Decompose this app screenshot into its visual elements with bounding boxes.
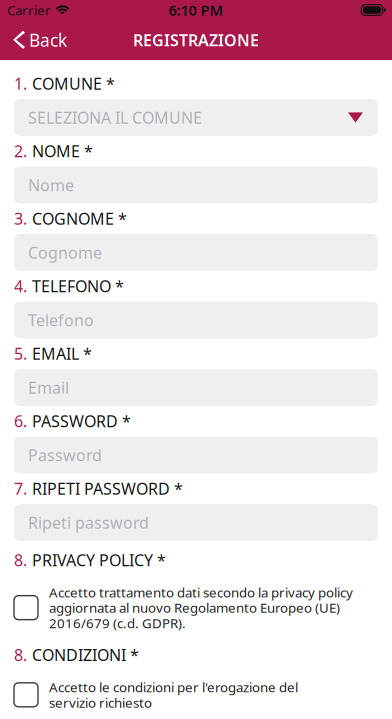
staticText: EMAIL * [32, 343, 92, 364]
staticText: 4. [14, 275, 27, 297]
staticText: 2. [14, 140, 27, 162]
staticText: Nome [28, 174, 74, 196]
staticText: CONDIZIONI * [32, 644, 139, 665]
staticText: Email [28, 377, 69, 398]
staticText: REGISTRAZIONE [133, 29, 259, 51]
staticText: 8. [14, 549, 27, 571]
staticText: PRIVACY POLICY * [32, 549, 166, 571]
staticText: 6:10 PM [168, 0, 223, 20]
staticText: PASSWORD * [32, 410, 131, 432]
staticText: 5. [14, 343, 27, 364]
button[interactable]: SELEZIONA IL COMUNE [14, 99, 378, 136]
staticText: 8. [14, 644, 27, 665]
staticText: RIPETI PASSWORD * [32, 478, 183, 499]
staticText: 6. [14, 410, 27, 432]
button[interactable]: Back [0, 20, 90, 60]
staticText: Accetto le condizioni per l'erogazione d… [49, 678, 298, 711]
staticText: COGNOME * [32, 208, 127, 229]
staticText: TELEFONO * [32, 275, 124, 297]
staticText: 7. [14, 478, 27, 499]
staticText: Ripeti password [28, 512, 149, 533]
staticText: Telefono [28, 309, 94, 331]
staticText: COMUNE * [32, 73, 115, 94]
button[interactable]: Accetto le condizioni per l'erogazione d… [14, 678, 378, 711]
button[interactable]: Accetto trattamento dati secondo la priv… [14, 583, 378, 632]
staticText: Back [29, 28, 67, 51]
staticText: NOME * [32, 140, 93, 162]
staticText: Password [28, 444, 102, 466]
staticText: 1. [14, 73, 27, 94]
staticText: Accetto trattamento dati secondo la priv… [49, 583, 353, 632]
staticText: SELEZIONA IL COMUNE [28, 107, 202, 128]
staticText: Carrier [7, 1, 51, 19]
staticText: Cognome [28, 242, 102, 263]
staticText: 3. [14, 208, 27, 229]
